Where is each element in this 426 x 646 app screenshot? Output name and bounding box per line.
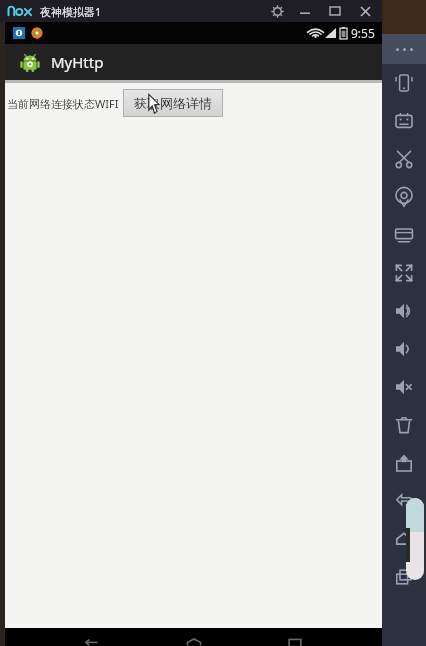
- staticText: 夜神模拟器1: [40, 4, 102, 19]
- button[interactable]: Settings: [270, 4, 284, 18]
- button[interactable]: Minimize: [298, 4, 312, 18]
- staticText: 当前网络连接状态WIFI: [7, 96, 119, 111]
- button[interactable]: Volume up: [382, 292, 426, 330]
- button[interactable]: Back: [382, 482, 426, 520]
- button[interactable]: Recents: [382, 558, 426, 596]
- button[interactable]: Back: [77, 628, 107, 646]
- button[interactable]: Close: [358, 4, 372, 18]
- button[interactable]: 获取网络详情: [124, 90, 222, 116]
- button[interactable]: Keyboard: [382, 102, 426, 140]
- staticText: MyHttp: [51, 52, 104, 72]
- button[interactable]: Home: [179, 628, 209, 646]
- button[interactable]: Mute: [382, 368, 426, 406]
- button[interactable]: Maximize: [328, 4, 342, 18]
- button[interactable]: Fullscreen: [382, 254, 426, 292]
- button[interactable]: Clean: [382, 406, 426, 444]
- staticText: 获取网络详情: [134, 95, 212, 111]
- button[interactable]: Location: [382, 178, 426, 216]
- button[interactable]: Scissors: [382, 140, 426, 178]
- staticText: 9:55: [351, 25, 375, 41]
- button[interactable]: Recents: [280, 628, 310, 646]
- button[interactable]: Volume down: [382, 330, 426, 368]
- button[interactable]: Screen: [382, 216, 426, 254]
- button[interactable]: Home: [382, 520, 426, 558]
- button[interactable]: Shake: [382, 64, 426, 102]
- button[interactable]: Install APK: [382, 444, 426, 482]
- button[interactable]: More: [382, 34, 426, 64]
